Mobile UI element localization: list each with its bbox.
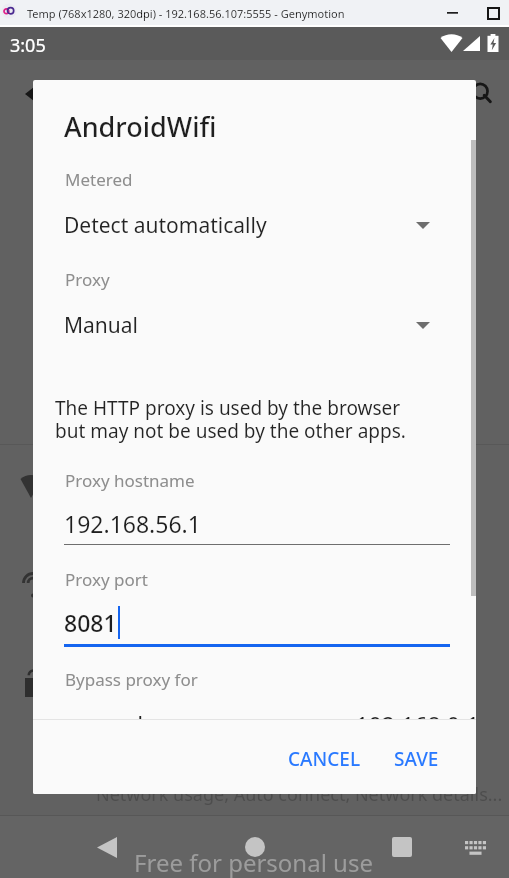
staticText: Proxy hostname: [65, 469, 195, 492]
staticText: Temp (768x1280, 320dpi) - 192.168.56.107…: [27, 6, 345, 21]
button[interactable]: Home: [230, 823, 280, 871]
staticText: The HTTP proxy is used by the browser bu…: [55, 395, 406, 444]
staticText: Manual: [64, 311, 138, 340]
staticText: 8081: [64, 607, 117, 638]
staticText: example.com,mycorp.com,192.168.0.1/24: [64, 709, 476, 771]
staticText: Bypass proxy for: [65, 668, 198, 691]
button[interactable]: Recents: [377, 823, 427, 871]
staticText: Free for personal use: [134, 846, 373, 878]
button[interactable]: Keyboard: [456, 825, 495, 869]
staticText: Proxy: [65, 268, 110, 291]
button[interactable]: Maximize: [478, 0, 509, 26]
button[interactable]: CANCEL: [280, 734, 369, 784]
button[interactable]: Minimize: [434, 0, 470, 26]
staticText: AndroidWifi: [64, 108, 217, 145]
staticText: Proxy port: [65, 568, 148, 591]
staticText: 3:05: [10, 33, 46, 58]
staticText: Metered: [65, 168, 133, 191]
button[interactable]: SAVE: [386, 734, 447, 784]
staticText: Detect automatically: [64, 211, 267, 240]
staticText: Network usage, Auto connect, Network det…: [96, 782, 503, 807]
button[interactable]: Dropdown: [403, 307, 443, 343]
staticText: SAVE: [394, 746, 439, 772]
staticText: CANCEL: [288, 746, 361, 772]
staticText: 192.168.56.1: [64, 508, 201, 539]
button[interactable]: Dropdown: [403, 207, 443, 243]
button[interactable]: Back: [82, 823, 132, 871]
